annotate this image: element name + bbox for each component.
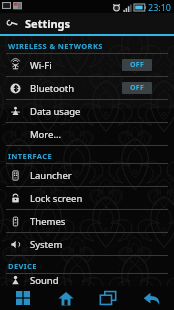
staticText: WIRELESS & NETWORKS	[8, 41, 103, 51]
staticText: Data usage	[30, 105, 81, 118]
staticText: OFF	[130, 83, 145, 93]
button[interactable]: OFF	[122, 59, 152, 71]
staticText: Wi-Fi	[30, 59, 52, 72]
staticText: Settings	[25, 16, 71, 31]
staticText: DEVICE	[8, 261, 37, 271]
staticText: Bluetooth	[30, 82, 75, 95]
button[interactable]: Apps	[3, 286, 43, 310]
staticText: Sound	[30, 274, 59, 286]
button[interactable]: Sound	[0, 274, 174, 286]
button[interactable]: Bluetooth	[0, 77, 174, 99]
button[interactable]: More...	[0, 123, 174, 145]
button[interactable]: Themes	[0, 210, 174, 232]
staticText: System	[30, 238, 63, 251]
staticText: OFF	[130, 60, 145, 70]
button[interactable]: Back	[131, 286, 171, 310]
staticText: INTERFACE	[8, 151, 53, 161]
button[interactable]: Data usage	[0, 100, 174, 122]
staticText: Themes	[30, 215, 66, 228]
button[interactable]: System	[0, 233, 174, 255]
staticText: Lock screen	[30, 192, 83, 205]
button[interactable]: Recent apps	[88, 286, 128, 310]
staticText: 23:10	[148, 1, 172, 13]
button[interactable]: Wi-Fi	[0, 54, 174, 76]
button[interactable]: Launcher	[0, 164, 174, 186]
staticText: More...	[30, 128, 62, 141]
staticText: Launcher	[30, 169, 72, 182]
button[interactable]: Lock screen	[0, 187, 174, 209]
button[interactable]: Home	[46, 286, 86, 310]
button[interactable]: OFF	[122, 82, 152, 94]
